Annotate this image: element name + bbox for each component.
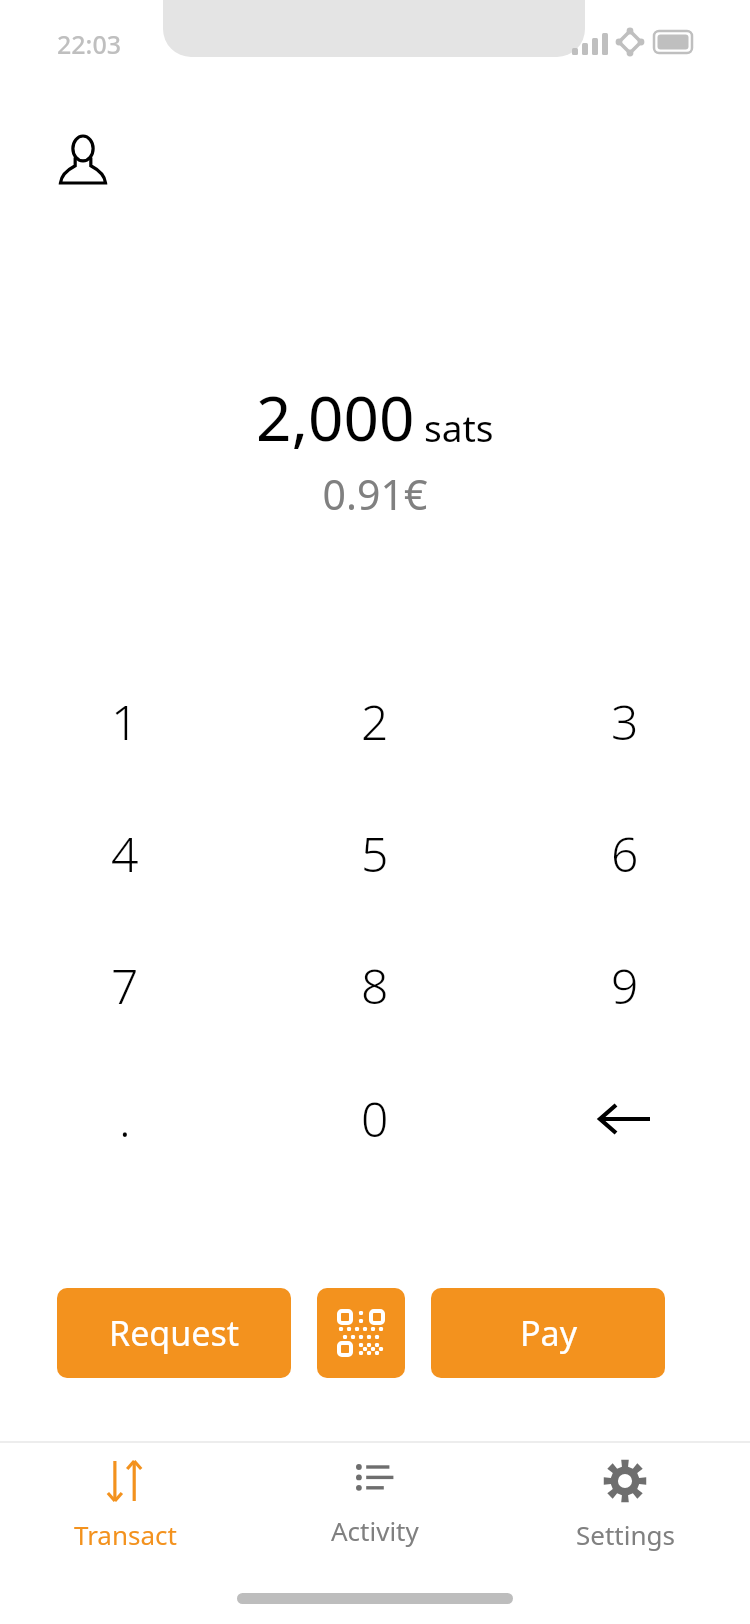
staticText: Request	[109, 1310, 239, 1356]
button[interactable]: 7	[0, 919, 250, 1052]
staticText: 5	[361, 821, 389, 886]
staticText: .	[119, 1086, 131, 1151]
staticText: 6	[611, 821, 639, 886]
staticText: Transact	[74, 1517, 177, 1552]
button[interactable]: 4	[0, 787, 250, 919]
staticText: 7	[111, 953, 139, 1018]
button[interactable]: 1	[0, 655, 250, 787]
staticText: Activity	[331, 1513, 419, 1548]
staticText: 3	[611, 689, 639, 754]
staticText: sats	[424, 402, 494, 452]
button[interactable]: Scan QR code	[317, 1288, 405, 1378]
staticText: Pay	[520, 1310, 577, 1356]
button[interactable]: 0	[250, 1052, 500, 1185]
staticText: 9	[611, 953, 639, 1018]
button[interactable]: Pay	[431, 1288, 665, 1378]
button[interactable]: 6	[500, 787, 750, 919]
button[interactable]: 9	[500, 919, 750, 1052]
button[interactable]: 5	[250, 787, 500, 919]
button[interactable]: 8	[250, 919, 500, 1052]
button[interactable]: 2	[250, 655, 500, 787]
button[interactable]: Profile	[52, 133, 114, 187]
staticText: 2	[361, 689, 389, 754]
staticText: 0	[361, 1086, 389, 1151]
staticText: 2,000	[256, 375, 415, 459]
button[interactable]: Settings	[500, 1443, 750, 1568]
button[interactable]: Backspace	[500, 1052, 750, 1185]
staticText: 0.91€	[0, 466, 750, 522]
button[interactable]: Request	[57, 1288, 291, 1378]
staticText: Settings	[576, 1517, 675, 1552]
button[interactable]: Activity	[250, 1443, 500, 1568]
staticText: 4	[111, 821, 139, 886]
staticText: 22:03	[57, 27, 122, 61]
button[interactable]: Transact	[0, 1443, 250, 1568]
button[interactable]: 3	[500, 655, 750, 787]
staticText: 1	[111, 689, 139, 754]
button[interactable]: .	[0, 1052, 250, 1185]
staticText: 8	[361, 953, 389, 1018]
